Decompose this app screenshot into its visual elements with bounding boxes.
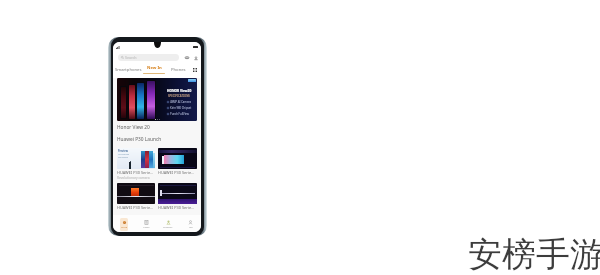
button[interactable]: News (135, 215, 157, 232)
staticText: New In (147, 65, 162, 71)
button[interactable]: HUAWEI P30 Serie... (117, 183, 155, 210)
button[interactable]: Store (113, 215, 135, 232)
staticText: HUAWEI P30 Serie... (117, 170, 154, 175)
button[interactable]: Messages (184, 55, 189, 60)
button[interactable]: Downloads (193, 55, 198, 60)
staticText: Kirin 980 Chipset (170, 106, 192, 110)
button[interactable]: Search (118, 54, 179, 61)
button[interactable]: HONOR View20 (117, 78, 197, 121)
staticText: HUAWEI P30 Serie... (158, 205, 195, 210)
staticText: new flagship (118, 156, 129, 158)
staticText: SPECIFICATIONS (168, 94, 190, 98)
staticText: Honor View 20 (117, 124, 150, 131)
staticText: Preview (118, 149, 128, 152)
staticText: Me (189, 225, 193, 228)
staticText: Punch FullView (170, 112, 189, 116)
staticText: Support (163, 225, 173, 228)
button[interactable]: Support (157, 215, 179, 232)
staticText: Revolutionary camera (117, 176, 150, 180)
button[interactable]: Phones (166, 63, 190, 76)
button[interactable]: All categories (190, 63, 199, 76)
button[interactable]: HUAWEI P30 Serie... (158, 148, 197, 175)
button[interactable]: New In (142, 63, 166, 76)
button[interactable]: HUAWEI P30 Serie... (158, 183, 197, 210)
staticText: 安榜手游网 (468, 233, 600, 275)
staticText: HUAWEI P30 (118, 153, 130, 156)
staticText: Search (125, 55, 137, 60)
staticText: Smartphones (115, 67, 142, 73)
staticText: HUAWEI P30 Serie... (158, 170, 195, 175)
staticText: News (143, 225, 150, 228)
staticText: HONOR View20 (167, 89, 192, 93)
staticText: Store (121, 225, 128, 228)
staticText: HUAWEI P30 Serie... (117, 205, 154, 210)
staticText: Phones (171, 67, 186, 73)
button[interactable]: Me (179, 215, 201, 232)
staticText: Huawei P30 Launch (117, 136, 162, 143)
staticText: 48MP AI Camera (170, 100, 191, 104)
button[interactable]: Preview (117, 148, 155, 180)
button[interactable]: Smartphones (115, 63, 142, 76)
